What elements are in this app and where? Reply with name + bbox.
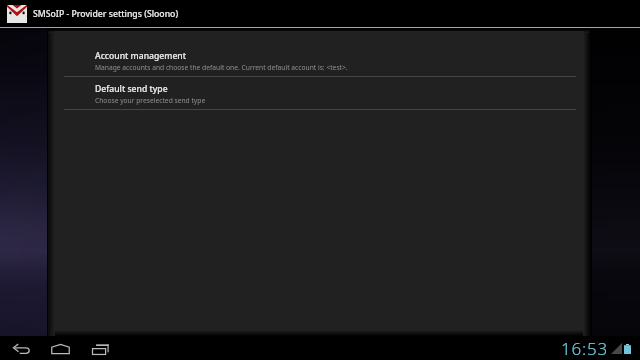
button[interactable]: Home — [46, 337, 74, 360]
button[interactable]: Default send type — [54, 81, 584, 109]
button[interactable]: SMSoIP - Provider settings (Sloono) — [0, 0, 640, 27]
staticText: Default send type — [95, 83, 168, 95]
staticText: 16:53 — [561, 337, 608, 360]
staticText: Choose your preselected send type — [95, 96, 206, 105]
staticText: Account management — [95, 50, 186, 62]
button[interactable]: Account management — [54, 48, 584, 76]
staticText: SMSoIP - Provider settings (Sloono) — [33, 8, 179, 20]
button[interactable]: Back — [7, 337, 35, 360]
staticText: Manage accounts and choose the default o… — [95, 63, 348, 72]
button[interactable]: Recent apps — [86, 337, 114, 360]
